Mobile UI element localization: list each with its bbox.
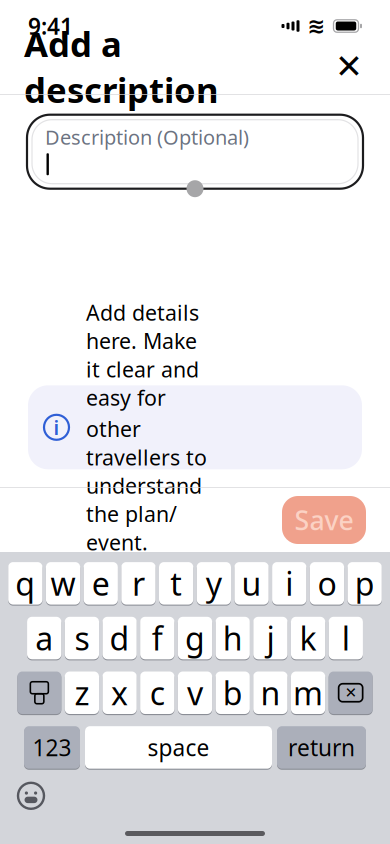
button[interactable]: return <box>277 725 366 770</box>
button[interactable]: e <box>84 561 118 606</box>
button[interactable]: w <box>46 561 80 606</box>
button[interactable]: l <box>329 616 363 660</box>
staticText: a <box>35 617 53 659</box>
staticText: o <box>317 562 336 605</box>
button[interactable]: h <box>215 616 250 660</box>
button[interactable]: d <box>102 616 137 660</box>
button[interactable]: k <box>291 616 325 660</box>
staticText: p <box>355 562 375 605</box>
staticText: r <box>132 562 145 605</box>
staticText: Description (Optional) <box>45 124 249 150</box>
staticText: s <box>74 617 89 659</box>
button[interactable]: y <box>197 561 231 606</box>
staticText: x <box>111 671 128 714</box>
staticText: i <box>53 414 59 441</box>
staticText: f <box>152 617 163 659</box>
staticText: 9:41 <box>28 11 73 41</box>
staticText: w <box>50 562 75 605</box>
button[interactable]: Shift <box>17 670 61 715</box>
button[interactable]: b <box>215 670 250 715</box>
button[interactable]: 123 <box>24 725 80 770</box>
staticText: k <box>300 617 317 659</box>
staticText: h <box>223 617 243 659</box>
staticText: l <box>342 617 350 659</box>
button[interactable]: v <box>178 670 212 715</box>
button[interactable]: c <box>140 670 174 715</box>
button[interactable]: Emoji <box>9 776 53 816</box>
staticText: u <box>241 562 261 605</box>
staticText: ✕ <box>345 684 357 701</box>
button[interactable]: n <box>253 670 287 715</box>
staticText: return <box>288 732 355 762</box>
staticText: m <box>293 671 323 714</box>
button[interactable]: u <box>234 561 269 606</box>
staticText: i <box>285 562 293 605</box>
button[interactable]: Save <box>282 496 366 544</box>
button[interactable]: o <box>310 561 344 606</box>
staticText: other travellers to understand the plan/… <box>86 415 207 556</box>
staticText: Save <box>294 502 353 538</box>
staticText: 123 <box>32 732 71 762</box>
button[interactable]: m <box>291 670 325 715</box>
button[interactable]: Delete <box>329 670 373 715</box>
staticText: v <box>187 671 203 714</box>
staticText: b <box>223 671 243 714</box>
button[interactable]: f <box>140 616 174 660</box>
button[interactable]: x <box>102 670 137 715</box>
button[interactable]: a <box>27 616 61 660</box>
staticText: t <box>170 562 182 605</box>
staticText: q <box>15 562 35 605</box>
button[interactable]: r <box>121 561 156 606</box>
staticText: ≋ <box>307 14 325 38</box>
button[interactable]: space <box>85 725 272 770</box>
staticText: g <box>185 617 205 659</box>
button[interactable]: p <box>347 561 382 606</box>
staticText: Add a description <box>24 20 219 113</box>
button[interactable]: z <box>65 670 99 715</box>
staticText: y <box>206 562 222 605</box>
staticText: ✕ <box>335 48 363 85</box>
staticText: c <box>150 671 165 714</box>
button[interactable]: Close <box>327 44 371 88</box>
staticText: e <box>92 562 110 605</box>
staticText: d <box>110 617 130 659</box>
button[interactable]: i <box>272 561 306 606</box>
staticText: Add details here. Make it clear and easy… <box>86 298 199 412</box>
staticText: space <box>147 732 209 762</box>
button[interactable]: g <box>178 616 212 660</box>
button[interactable]: t <box>159 561 193 606</box>
staticText: n <box>260 671 280 714</box>
button[interactable]: s <box>65 616 99 660</box>
button[interactable]: j <box>253 616 287 660</box>
staticText: j <box>266 617 274 659</box>
button[interactable]: q <box>8 561 42 606</box>
staticText: z <box>74 671 89 714</box>
